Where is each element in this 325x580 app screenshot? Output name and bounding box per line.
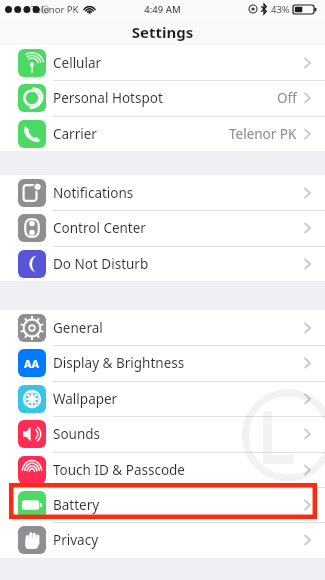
button[interactable]: Notifications	[0, 175, 325, 210]
other: General	[18, 314, 46, 342]
button[interactable]: Control Center	[0, 210, 325, 245]
other: Personal Hotspot	[18, 84, 46, 112]
staticText: Touch ID & Passcode	[53, 461, 185, 479]
staticText: Privacy	[53, 531, 99, 549]
staticText: Settings	[0, 22, 325, 42]
staticText: Display & Brightness	[53, 354, 185, 372]
other: Cellular	[18, 49, 46, 77]
staticText: Wallpaper	[53, 390, 118, 408]
button[interactable]: Cellular	[0, 45, 325, 80]
button[interactable]: Personal Hotspot	[0, 80, 325, 115]
button[interactable]: Do Not Disturb	[0, 246, 325, 281]
staticText: Notifications	[53, 184, 134, 202]
button[interactable]: Touch ID and Passcode	[0, 452, 325, 487]
other: Notifications	[18, 179, 46, 207]
staticText: Battery	[53, 496, 100, 514]
staticText: Personal Hotspot	[53, 89, 163, 107]
staticText: Cellular	[53, 54, 102, 72]
staticText: Control Center	[53, 219, 146, 237]
staticText: 4:49 AM	[0, 3, 325, 16]
staticText: General	[53, 319, 103, 337]
other: Display and Brightness	[18, 349, 46, 377]
staticText: Do Not Disturb	[53, 255, 149, 273]
staticText: Telenor PK	[31, 3, 79, 16]
staticText: Off	[277, 89, 297, 107]
button[interactable]: Display and Brightness	[0, 345, 325, 380]
other: Carrier	[18, 120, 46, 148]
other: Battery	[18, 491, 46, 519]
staticText: Telenor PK	[229, 125, 297, 143]
other: Do Not Disturb	[18, 250, 46, 278]
staticText: 43%	[271, 3, 290, 16]
button[interactable]: Sounds	[0, 416, 325, 451]
button[interactable]: Carrier	[0, 116, 325, 151]
button[interactable]: General	[0, 310, 325, 345]
other: Touch ID and Passcode	[18, 456, 46, 484]
other: Privacy	[18, 526, 46, 554]
other: Sounds	[18, 420, 46, 448]
staticText: Carrier	[53, 125, 97, 143]
staticText: Sounds	[53, 425, 101, 443]
other: Control Center	[18, 214, 46, 242]
button[interactable]: Privacy	[0, 522, 325, 557]
button[interactable]: Wallpaper	[0, 381, 325, 416]
staticText: AA	[24, 356, 40, 371]
other: Wallpaper	[18, 385, 46, 413]
button[interactable]: Battery	[0, 487, 325, 522]
